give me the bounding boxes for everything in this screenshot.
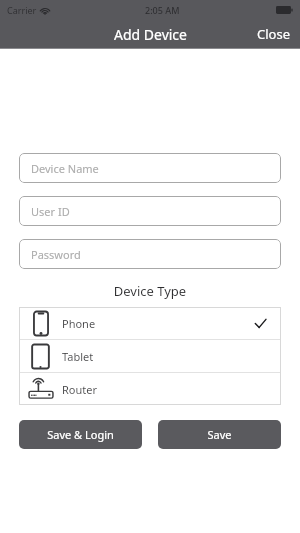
staticText: Add Device <box>114 25 187 44</box>
staticText: 2:05 AM <box>145 4 180 16</box>
button[interactable]: Device Name <box>19 153 281 183</box>
button[interactable]: Phone <box>19 307 281 339</box>
button[interactable]: User ID <box>19 196 281 226</box>
staticText: User ID <box>31 204 70 219</box>
staticText: Carrier <box>7 4 37 16</box>
button[interactable]: Tablet <box>19 340 281 372</box>
staticText: Phone <box>62 316 96 331</box>
button[interactable]: Close <box>247 21 300 47</box>
button[interactable]: Password <box>19 239 281 269</box>
button[interactable]: Router <box>19 373 281 405</box>
staticText: Router <box>62 382 98 397</box>
staticText: Tablet <box>62 349 94 364</box>
button[interactable]: Save <box>158 420 281 449</box>
staticText: Device Type <box>0 282 300 300</box>
staticText: Save & Login <box>47 427 114 442</box>
staticText: Close <box>257 25 290 43</box>
staticText: Device Name <box>31 161 99 176</box>
staticText: Password <box>31 247 81 262</box>
staticText: Save <box>207 427 232 442</box>
button[interactable]: Save & Login <box>19 420 142 449</box>
